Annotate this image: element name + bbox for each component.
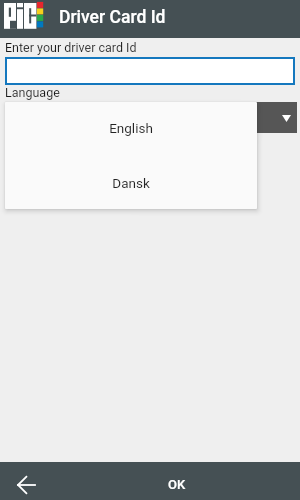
staticText: Driver Card Id	[59, 7, 166, 28]
staticText: OK	[168, 477, 186, 492]
button[interactable]: Dansk	[5, 155, 257, 208]
staticText: English	[109, 120, 153, 136]
button[interactable]: English	[5, 102, 257, 155]
button[interactable]: Back	[0, 462, 52, 500]
staticText: Dansk	[112, 175, 150, 191]
button[interactable]: Open language dropdown	[256, 102, 297, 133]
button[interactable]: OK	[145, 462, 205, 500]
button[interactable]: Driver card Id input field	[5, 57, 295, 85]
staticText: Language	[5, 85, 60, 100]
staticText: Enter your driver card Id	[5, 40, 137, 55]
